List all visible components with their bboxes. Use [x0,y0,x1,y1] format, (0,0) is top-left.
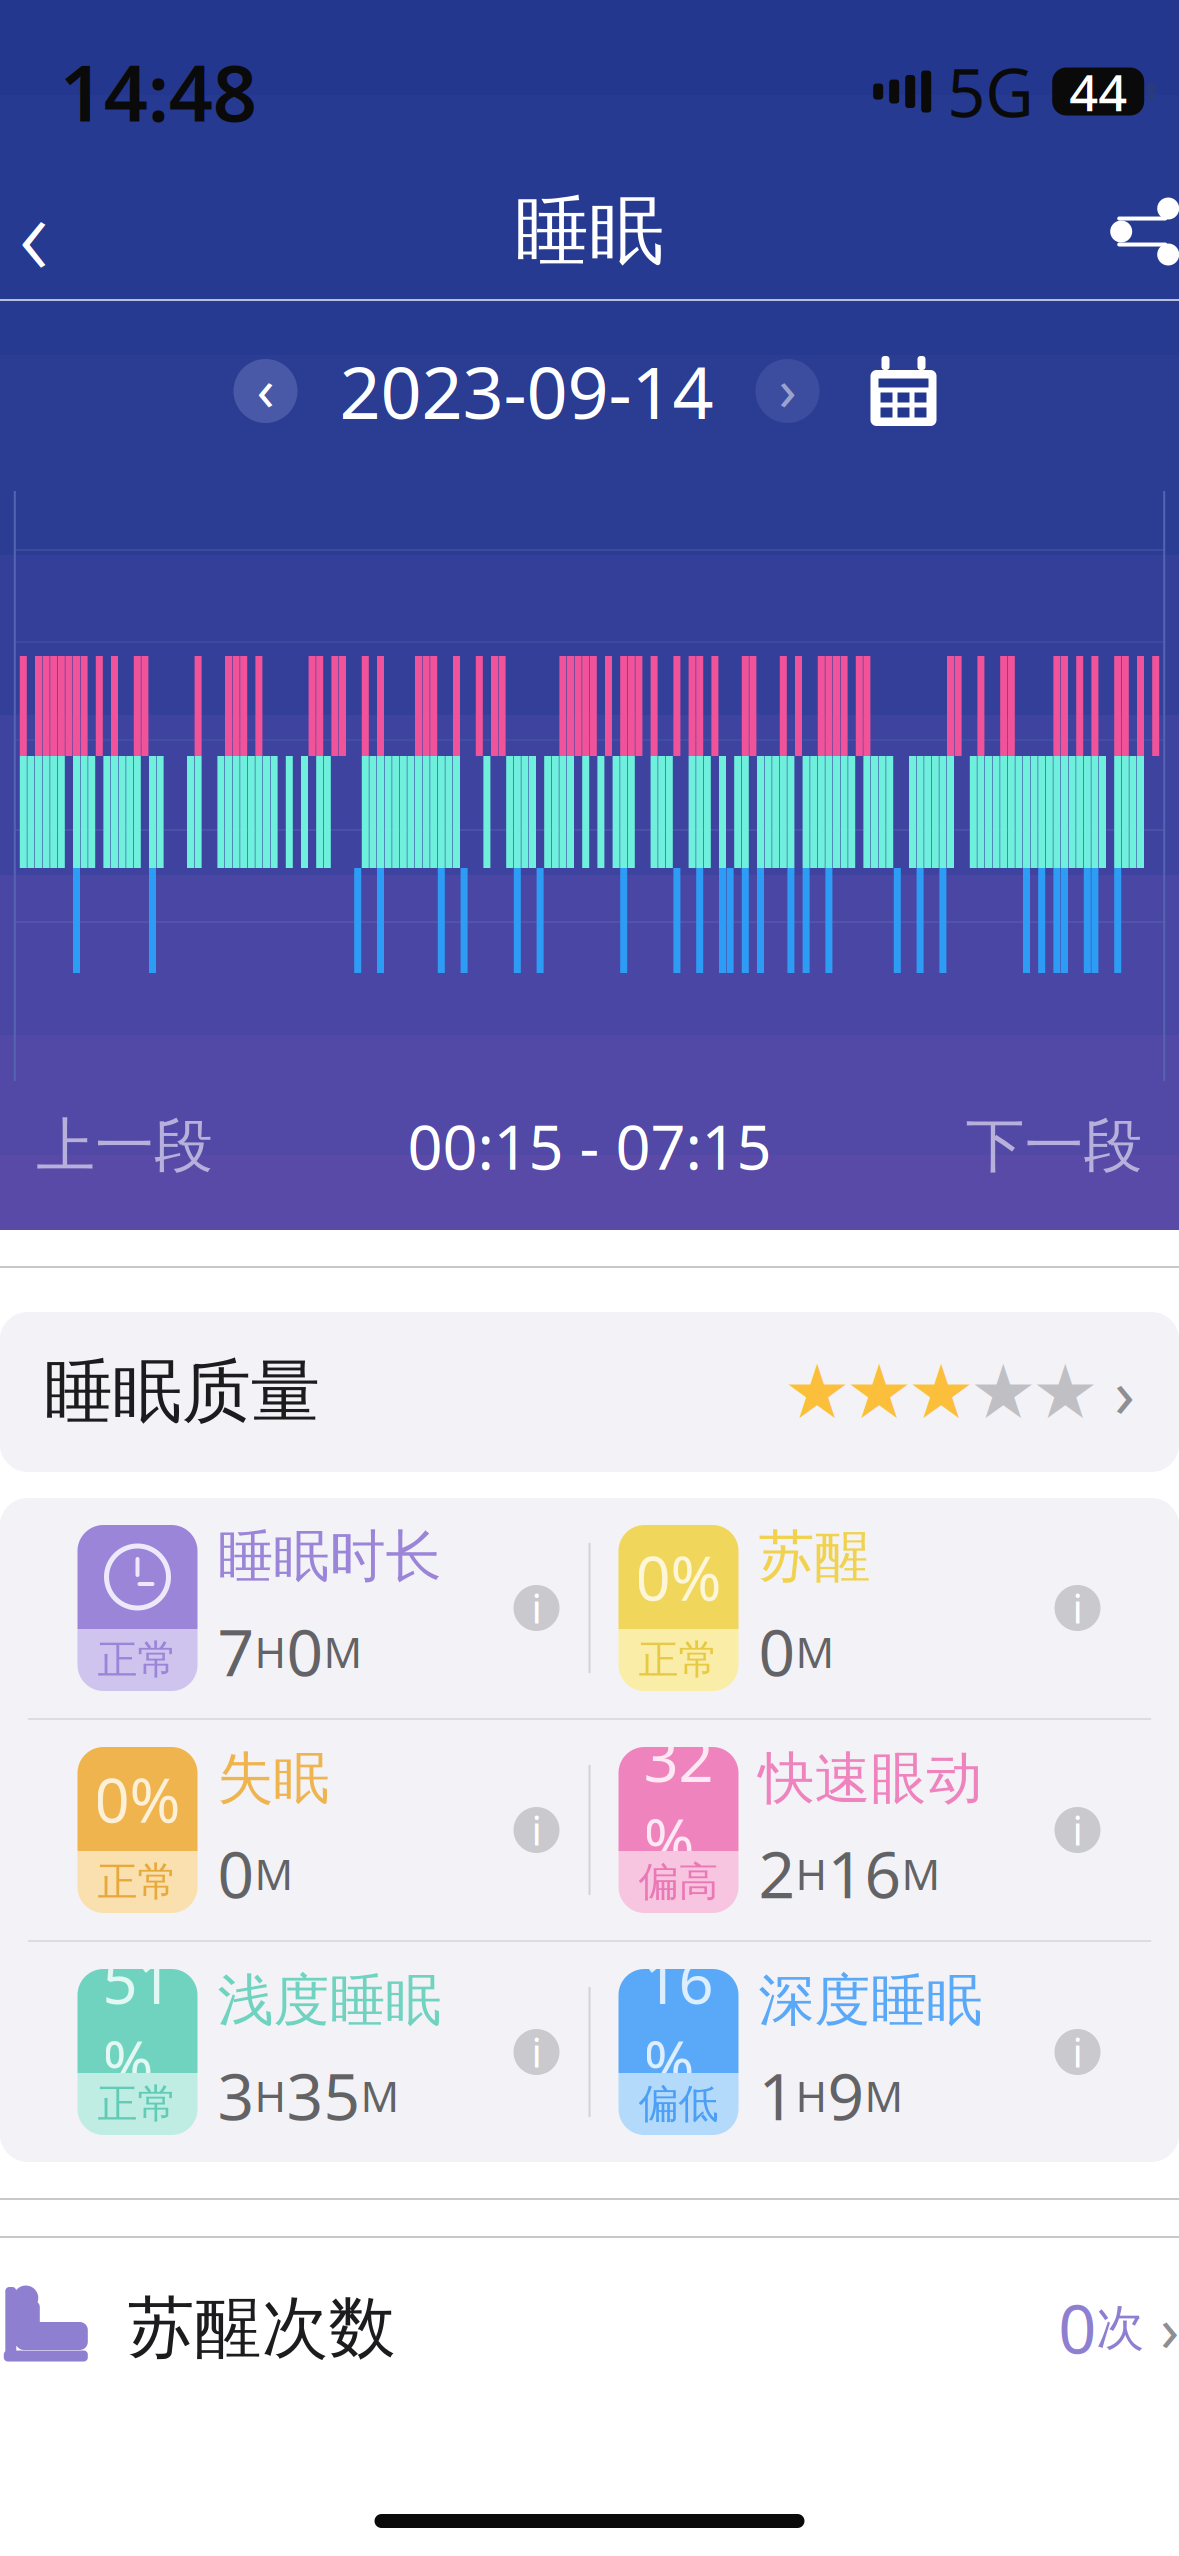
staticText: 正常 [97,1857,177,1906]
staticText: 51% [102,1940,172,2102]
staticText: 快速眼动 [758,1744,982,1813]
staticText: ★ [1032,1350,1099,1434]
staticText: ★ [784,1350,851,1434]
staticText: M [864,2067,903,2124]
staticText: 次 [1096,2298,1144,2357]
staticText: ★ [970,1350,1037,1434]
staticText: 16% [643,1940,713,2102]
staticText: 苏醒 [758,1522,870,1591]
staticText: 00:15 - 07:15 [407,1105,771,1187]
button[interactable]: 上一段 [10,1101,240,1191]
staticText: 16 [827,1831,901,1916]
staticText: 14:48 [60,40,257,143]
staticText: 1 [758,2053,795,2138]
button[interactable]: 返回 [0,171,94,291]
staticText: 睡眠时长 [217,1522,441,1591]
staticText: 5G [947,47,1034,136]
staticText: 上一段 [36,1110,213,1182]
staticText: ★ [846,1350,913,1434]
staticText: 偏低 [638,2079,718,2128]
button[interactable]: 分享 [1085,171,1179,291]
staticText: 3 [217,2053,254,2138]
staticText: ‹ [256,349,274,427]
button[interactable]: 0% [49,1720,588,1940]
staticText: i [531,1803,541,1856]
button[interactable]: 0% [590,1498,1129,1718]
staticText: › [1160,2287,1179,2369]
staticText: ★ [908,1350,975,1434]
button[interactable]: 51% [49,1942,588,2162]
button[interactable]: 苏醒次数 [0,2238,1179,2418]
staticText: i [1072,1581,1082,1634]
staticText: i [531,1581,541,1634]
staticText: H [795,2067,827,2124]
staticText: 苏醒次数 [128,2287,396,2369]
staticText: H [254,2067,286,2124]
staticText: 0% [635,1536,721,1618]
staticText: 0 [1058,2284,1096,2372]
staticText: 0% [94,1758,180,1840]
staticText: 偏高 [638,1857,718,1906]
staticText: 正常 [97,1635,177,1684]
staticText: 睡眠 [514,186,664,277]
staticText: 2023-09-14 [339,343,713,439]
staticText: 35 [286,2053,360,2138]
button[interactable]: 下一段 [939,1101,1169,1191]
staticText: 失眠 [217,1744,329,1813]
staticText: i [531,2025,541,2078]
staticText: 0 [758,1609,795,1694]
staticText: 下一段 [966,1110,1143,1182]
button[interactable]: 选择日期 [853,346,953,436]
staticText: M [795,1623,834,1680]
staticText: M [323,1623,362,1680]
button[interactable]: 前一天 [225,351,305,431]
staticText: 7 [217,1609,254,1694]
button[interactable]: 32% [590,1720,1129,1940]
button[interactable]: 睡眠质量 [0,1312,1179,1472]
staticText: 2 [758,1831,795,1916]
staticText: H [254,1623,286,1680]
button[interactable]: 后一天 [747,351,827,431]
staticText: 0 [286,1609,323,1694]
staticText: › [1114,1348,1135,1436]
button[interactable]: 正常 [49,1498,588,1718]
staticText: 正常 [638,1635,718,1684]
staticText: 0 [217,1831,254,1916]
staticText: M [360,2067,399,2124]
staticText: 44 [1069,58,1127,125]
staticText: 深度睡眠 [758,1966,982,2035]
button[interactable]: 16% [590,1942,1129,2162]
staticText: M [901,1845,940,1902]
staticText: ‹ [19,155,49,308]
staticText: 睡眠质量 [44,1349,320,1435]
staticText: › [778,349,796,427]
staticText: i [1072,2025,1082,2078]
staticText: 浅度睡眠 [217,1966,441,2035]
staticText: 32% [643,1718,713,1880]
staticText: 正常 [97,2079,177,2128]
staticText: 9 [827,2053,864,2138]
staticText: M [254,1845,293,1902]
staticText: i [1072,1803,1082,1856]
staticText: H [795,1845,827,1902]
